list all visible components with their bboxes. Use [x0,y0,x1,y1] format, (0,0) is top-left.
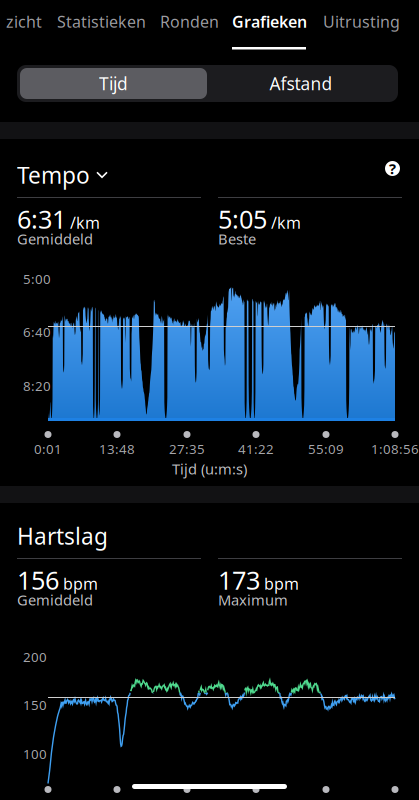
staticText: Hartslag [17,521,108,551]
button[interactable]: zicht [6,11,42,32]
staticText: bpm [264,573,299,594]
staticText: Gemiddeld [17,229,93,248]
staticText: 150 [23,696,47,714]
staticText: /km [70,212,100,233]
staticText: Tempo [17,160,90,190]
staticText: Ronden [160,11,219,32]
staticText: /km [271,212,301,233]
staticText: bpm [63,573,98,594]
button[interactable]: Statistieken [57,11,146,32]
staticText: Maximum [218,590,288,609]
staticText: Statistieken [57,11,146,32]
staticText: zicht [6,11,42,32]
staticText: 5:00 [23,270,51,288]
staticText: ? [389,159,396,178]
staticText: 100 [23,745,47,763]
staticText: 156 [17,563,59,597]
staticText: 6:31 [17,202,66,236]
staticText: 8:20 [23,377,51,395]
staticText: Tijd [99,72,128,95]
staticText: Uitrusting [323,11,400,32]
button[interactable]: Uitrusting [323,11,400,32]
staticText: 27:35 [169,440,205,458]
staticText: 1:08:56 [371,440,419,458]
staticText: Tijd (u:m:s) [172,459,247,478]
button[interactable]: Ronden [160,11,219,32]
staticText: 200 [23,648,47,666]
button[interactable]: Afstand [207,68,395,99]
staticText: 173 [218,563,260,597]
staticText: Afstand [269,72,332,95]
staticText: Beste [218,229,256,248]
staticText: 55:09 [308,440,344,458]
button[interactable]: Grafieken [232,11,308,51]
staticText: 0:01 [34,440,62,458]
button[interactable]: Help [385,161,400,176]
staticText: Grafieken [232,11,307,32]
staticText: 6:40 [23,323,51,341]
button[interactable]: Tijd [20,68,207,99]
staticText: Gemiddeld [17,590,93,609]
staticText: 13:48 [99,440,135,458]
staticText: 5:05 [218,202,267,236]
staticText: 41:22 [238,440,274,458]
button[interactable]: Tempo [17,160,107,190]
